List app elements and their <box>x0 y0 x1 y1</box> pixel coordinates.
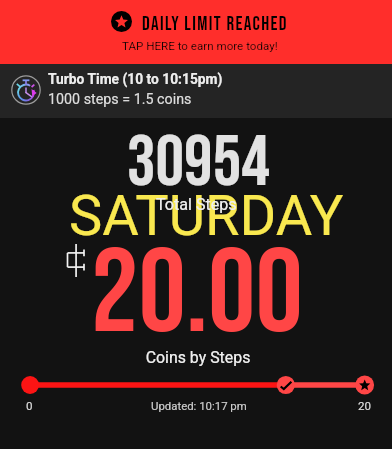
staticText: 20.00 <box>91 224 303 366</box>
staticText: TAP HERE to earn more today! <box>122 39 278 53</box>
staticText: 30954 <box>127 121 270 207</box>
staticText: Turbo Time (10 to 10:15pm) <box>48 71 223 87</box>
button[interactable]: Turbo Time (10 to 10:15pm) <box>0 64 392 118</box>
staticText: Total Steps <box>156 195 237 214</box>
button[interactable]: Coins by steps progress <box>0 372 392 398</box>
staticText: 1000 steps = 1.5 coins <box>48 91 192 108</box>
button[interactable]: DAILY LIMIT REACHED <box>0 0 392 64</box>
staticText: SATURDAY <box>69 183 344 249</box>
staticText: DAILY LIMIT REACHED <box>142 13 288 36</box>
staticText: 20 <box>358 399 372 413</box>
staticText: 0 <box>26 399 33 413</box>
staticText: Updated: 10:17 pm <box>151 399 247 412</box>
staticText: Coins by Steps <box>2 348 392 367</box>
